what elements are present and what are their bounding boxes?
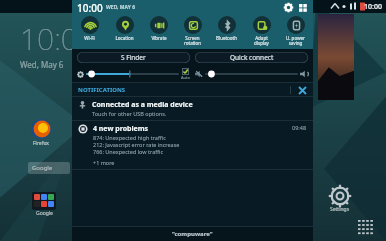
staticText: Location xyxy=(115,35,134,41)
button[interactable]: Adapt display xyxy=(245,15,278,46)
button[interactable]: Connected as a media device xyxy=(72,97,313,120)
staticText: U. power saving xyxy=(286,35,305,46)
staticText: 10:0 xyxy=(20,18,78,59)
button[interactable]: Auto brightness xyxy=(181,68,190,80)
button[interactable]: Wi-Fi xyxy=(73,15,106,41)
staticText: Bluetooth xyxy=(216,35,237,41)
staticText: 874: Unexpected high traffic xyxy=(93,134,166,141)
button[interactable]: Apps xyxy=(358,220,376,238)
staticText: Adapt display xyxy=(254,35,269,46)
staticText: 10:00 xyxy=(364,2,382,12)
button[interactable]: Location xyxy=(108,15,141,41)
staticText: Connected as a media device xyxy=(92,100,193,110)
button[interactable] xyxy=(206,69,297,79)
staticText: Google xyxy=(32,164,53,172)
button[interactable]: 4 new problems xyxy=(72,121,313,169)
button[interactable]: U. power saving xyxy=(279,15,312,46)
button[interactable]: S Finder xyxy=(77,52,190,63)
staticText: WED, MAY 6 xyxy=(106,4,135,11)
staticText: Screen rotation xyxy=(184,35,201,46)
button[interactable]: Settings xyxy=(330,186,350,213)
staticText: 212: Javascript error rate increase xyxy=(93,141,180,148)
staticText: Vibrate xyxy=(151,35,167,41)
staticText: Google xyxy=(36,210,53,217)
button[interactable]: Bluetooth xyxy=(210,15,243,41)
staticText: 766: Unexpected low traffic xyxy=(93,148,164,155)
staticText: 4 new problems xyxy=(93,124,149,134)
other: Firefox xyxy=(30,118,52,140)
staticText: Wed, May 6 xyxy=(20,59,64,70)
button[interactable]: Vibrate xyxy=(142,15,175,41)
button[interactable]: Settings xyxy=(283,2,294,13)
button[interactable]: Firefox xyxy=(30,118,52,147)
button[interactable]: Edit quick settings xyxy=(297,2,308,13)
button[interactable] xyxy=(87,69,178,79)
other: Settings xyxy=(330,186,350,206)
staticText: "compuware" xyxy=(172,230,213,238)
button[interactable]: Google xyxy=(32,192,56,217)
staticText: S Finder xyxy=(121,53,146,62)
button[interactable]: Google xyxy=(28,162,70,174)
button[interactable]: Clear notifications xyxy=(297,85,307,95)
staticText: Firefox xyxy=(33,140,49,147)
staticText: Settings xyxy=(330,206,350,213)
staticText: Wi-Fi xyxy=(84,35,95,41)
button[interactable]: Screen rotation xyxy=(176,15,209,46)
staticText: Auto xyxy=(181,75,190,80)
button[interactable]: Quick connect xyxy=(195,52,308,63)
staticText: +1 more xyxy=(93,159,115,166)
staticText: NOTIFICATIONS xyxy=(78,86,126,94)
staticText: Touch for other USB options. xyxy=(92,110,167,117)
staticText: Quick connect xyxy=(230,53,274,62)
staticText: 09:48 xyxy=(292,124,307,131)
staticText: 10:00 xyxy=(77,1,103,15)
